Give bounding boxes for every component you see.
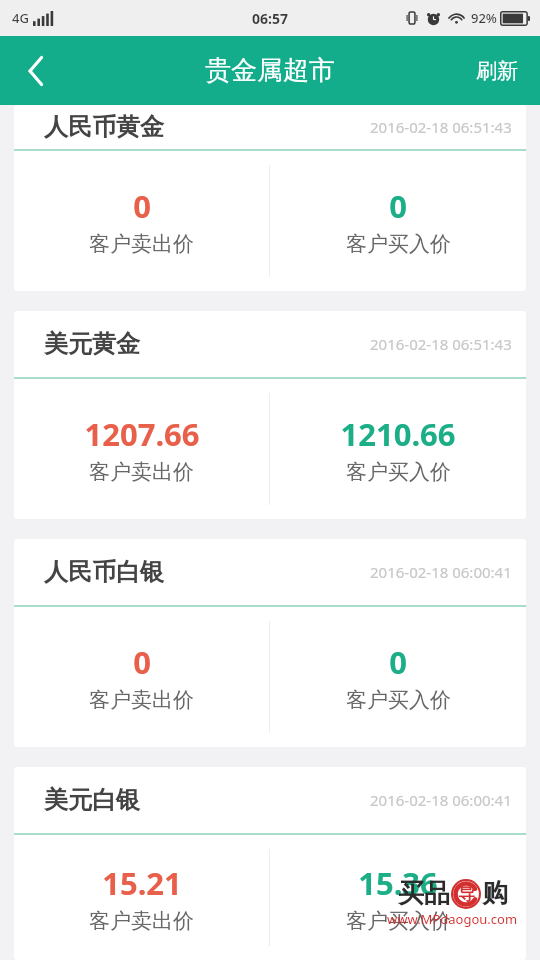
staticText: 美元黄金 [44, 329, 140, 359]
button[interactable]: 刷新 [454, 36, 540, 105]
staticText: 15.36 [358, 862, 438, 904]
staticText: 美元白银 [44, 785, 140, 815]
button[interactable]: Back [0, 36, 72, 105]
button[interactable]: 15.36 [270, 835, 526, 960]
staticText: 15.21 [102, 862, 182, 904]
staticText: www.MPdaogou.com [387, 910, 518, 928]
staticText: 92% [471, 9, 497, 27]
staticText: 0 [389, 641, 407, 683]
staticText: 06:57 [252, 9, 288, 28]
staticText: 导 [458, 884, 475, 905]
staticText: 2016-02-18 06:51:43 [370, 117, 512, 137]
staticText: 客户买入价 [346, 231, 451, 257]
staticText: 客户卖出价 [89, 687, 194, 713]
button[interactable]: 人民币白银 [14, 539, 526, 747]
button[interactable]: 人民币黄金 [14, 105, 526, 291]
staticText: 客户卖出价 [89, 459, 194, 485]
button[interactable]: 1210.66 [270, 379, 526, 519]
staticText: 2016-02-18 06:00:41 [370, 562, 512, 582]
staticText: 0 [389, 185, 407, 227]
staticText: 1210.66 [340, 413, 456, 455]
staticText: 4G [12, 9, 29, 27]
staticText: 客户买入价 [346, 687, 451, 713]
button[interactable]: 15.21 [14, 835, 269, 960]
staticText: 0 [133, 641, 151, 683]
button[interactable]: 0 [270, 151, 526, 291]
button[interactable]: 0 [270, 607, 526, 747]
staticText: 购 [482, 877, 508, 910]
staticText: 1207.66 [84, 413, 200, 455]
staticText: 客户卖出价 [89, 908, 194, 934]
staticText: 刷新 [476, 58, 518, 84]
staticText: 客户买入价 [346, 908, 451, 934]
staticText: 客户买入价 [346, 459, 451, 485]
staticText: 客户卖出价 [89, 231, 194, 257]
staticText: 2016-02-18 06:51:43 [370, 334, 512, 354]
button[interactable]: 0 [14, 151, 269, 291]
staticText: 买品 [398, 877, 450, 910]
staticText: 2016-02-18 06:00:41 [370, 790, 512, 810]
button[interactable]: 美元黄金 [14, 311, 526, 519]
button[interactable]: 0 [14, 607, 269, 747]
staticText: 贵金属超市 [205, 54, 335, 87]
staticText: 0 [133, 185, 151, 227]
staticText: 人民币黄金 [44, 112, 164, 142]
staticText: 人民币白银 [44, 557, 164, 587]
button[interactable]: 美元白银 [14, 767, 526, 960]
button[interactable]: 1207.66 [14, 379, 269, 519]
